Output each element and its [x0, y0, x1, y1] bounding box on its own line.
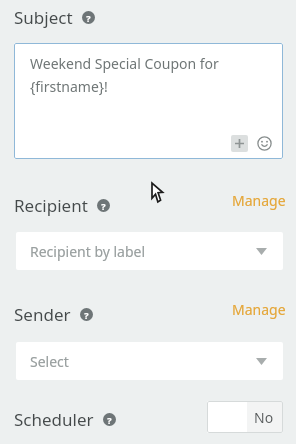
staticText: Select [30, 352, 69, 371]
staticText: ? [86, 12, 91, 24]
button[interactable]: Scheduler toggle, off [207, 401, 283, 433]
staticText: No [254, 408, 274, 427]
button[interactable]: Manage [229, 297, 289, 322]
button[interactable]: Recipient by label [16, 232, 283, 270]
staticText: Weekend Special Coupon for {firstname}! [30, 54, 219, 96]
staticText: ? [84, 309, 89, 321]
staticText: Scheduler [14, 408, 94, 431]
staticText: Manage [232, 300, 286, 319]
button[interactable]: Help [82, 11, 95, 24]
button[interactable]: Help [103, 413, 116, 426]
staticText: Recipient [14, 194, 88, 217]
button[interactable]: Help [97, 199, 110, 212]
staticText: Recipient by label [30, 242, 146, 261]
staticText: Subject [14, 6, 73, 29]
staticText: ? [101, 200, 106, 212]
button[interactable]: Manage [229, 188, 289, 213]
button[interactable]: Select [16, 342, 283, 380]
button[interactable]: Help [80, 308, 93, 321]
staticText: Sender [14, 303, 71, 326]
button[interactable]: Insert emoji [256, 135, 273, 152]
staticText: ? [107, 414, 112, 426]
button[interactable]: Weekend Special Coupon for {firstname}! [14, 43, 283, 159]
button[interactable]: Insert merge tag [231, 135, 248, 152]
staticText: Manage [232, 191, 286, 210]
